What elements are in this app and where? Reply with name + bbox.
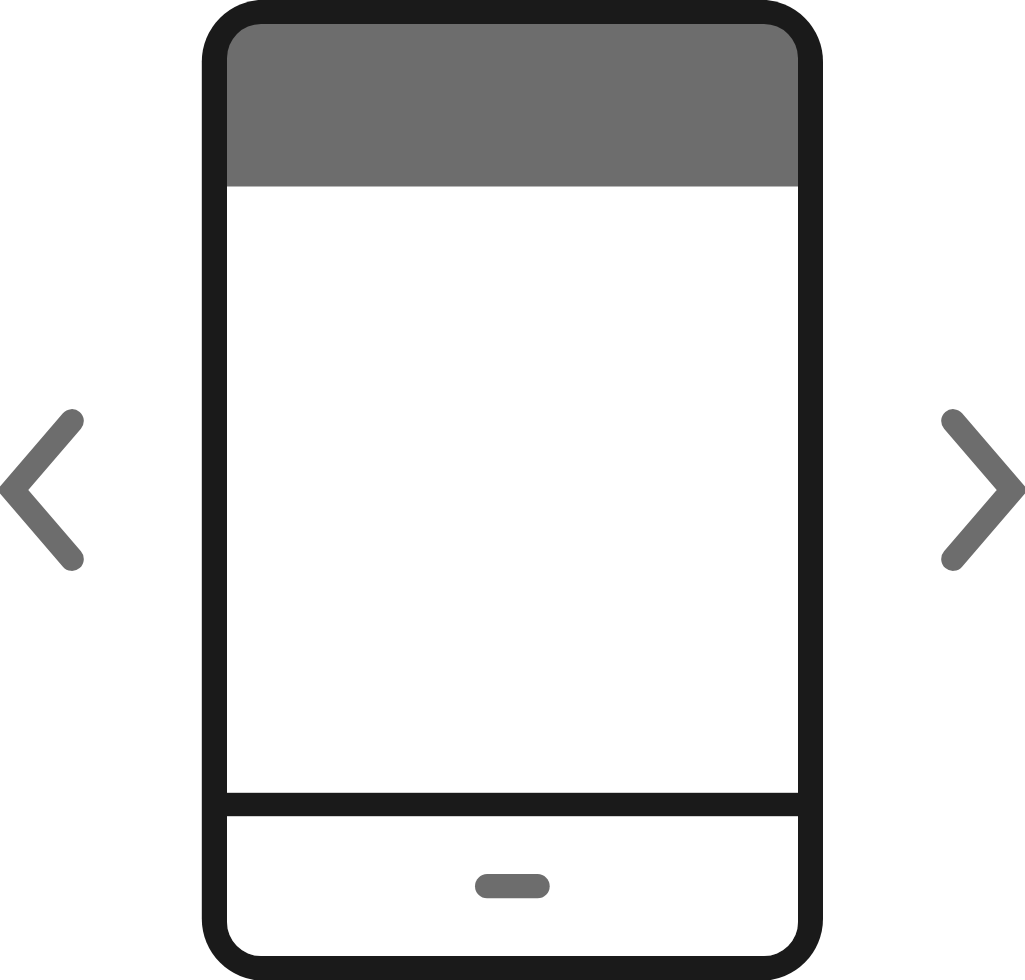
button[interactable]: Phone screen preview <box>202 0 823 980</box>
button[interactable]: Previous screen <box>0 398 112 582</box>
button[interactable]: Next screen <box>913 398 1025 582</box>
